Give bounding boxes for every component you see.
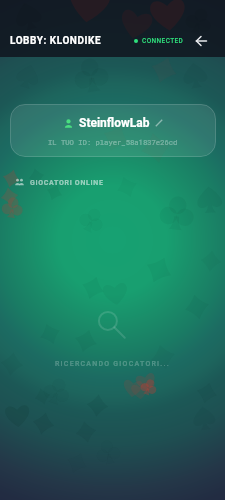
button[interactable]: Back [192,32,210,50]
staticText: SteinflowLab [79,116,150,130]
button[interactable]: Edit name [155,119,163,127]
button[interactable]: CONNECTED [132,34,186,48]
staticText: GIOCATORI ONLINE [30,179,104,187]
button[interactable]: SteinflowLab [10,104,216,157]
staticText: IL TUO ID: player_58a1837e26cd [48,137,178,146]
staticText: CONNECTED [142,37,184,45]
staticText: LOBBY: KLONDIKE [10,35,102,47]
staticText: RICERCANDO GIOCATORI... [55,360,170,368]
